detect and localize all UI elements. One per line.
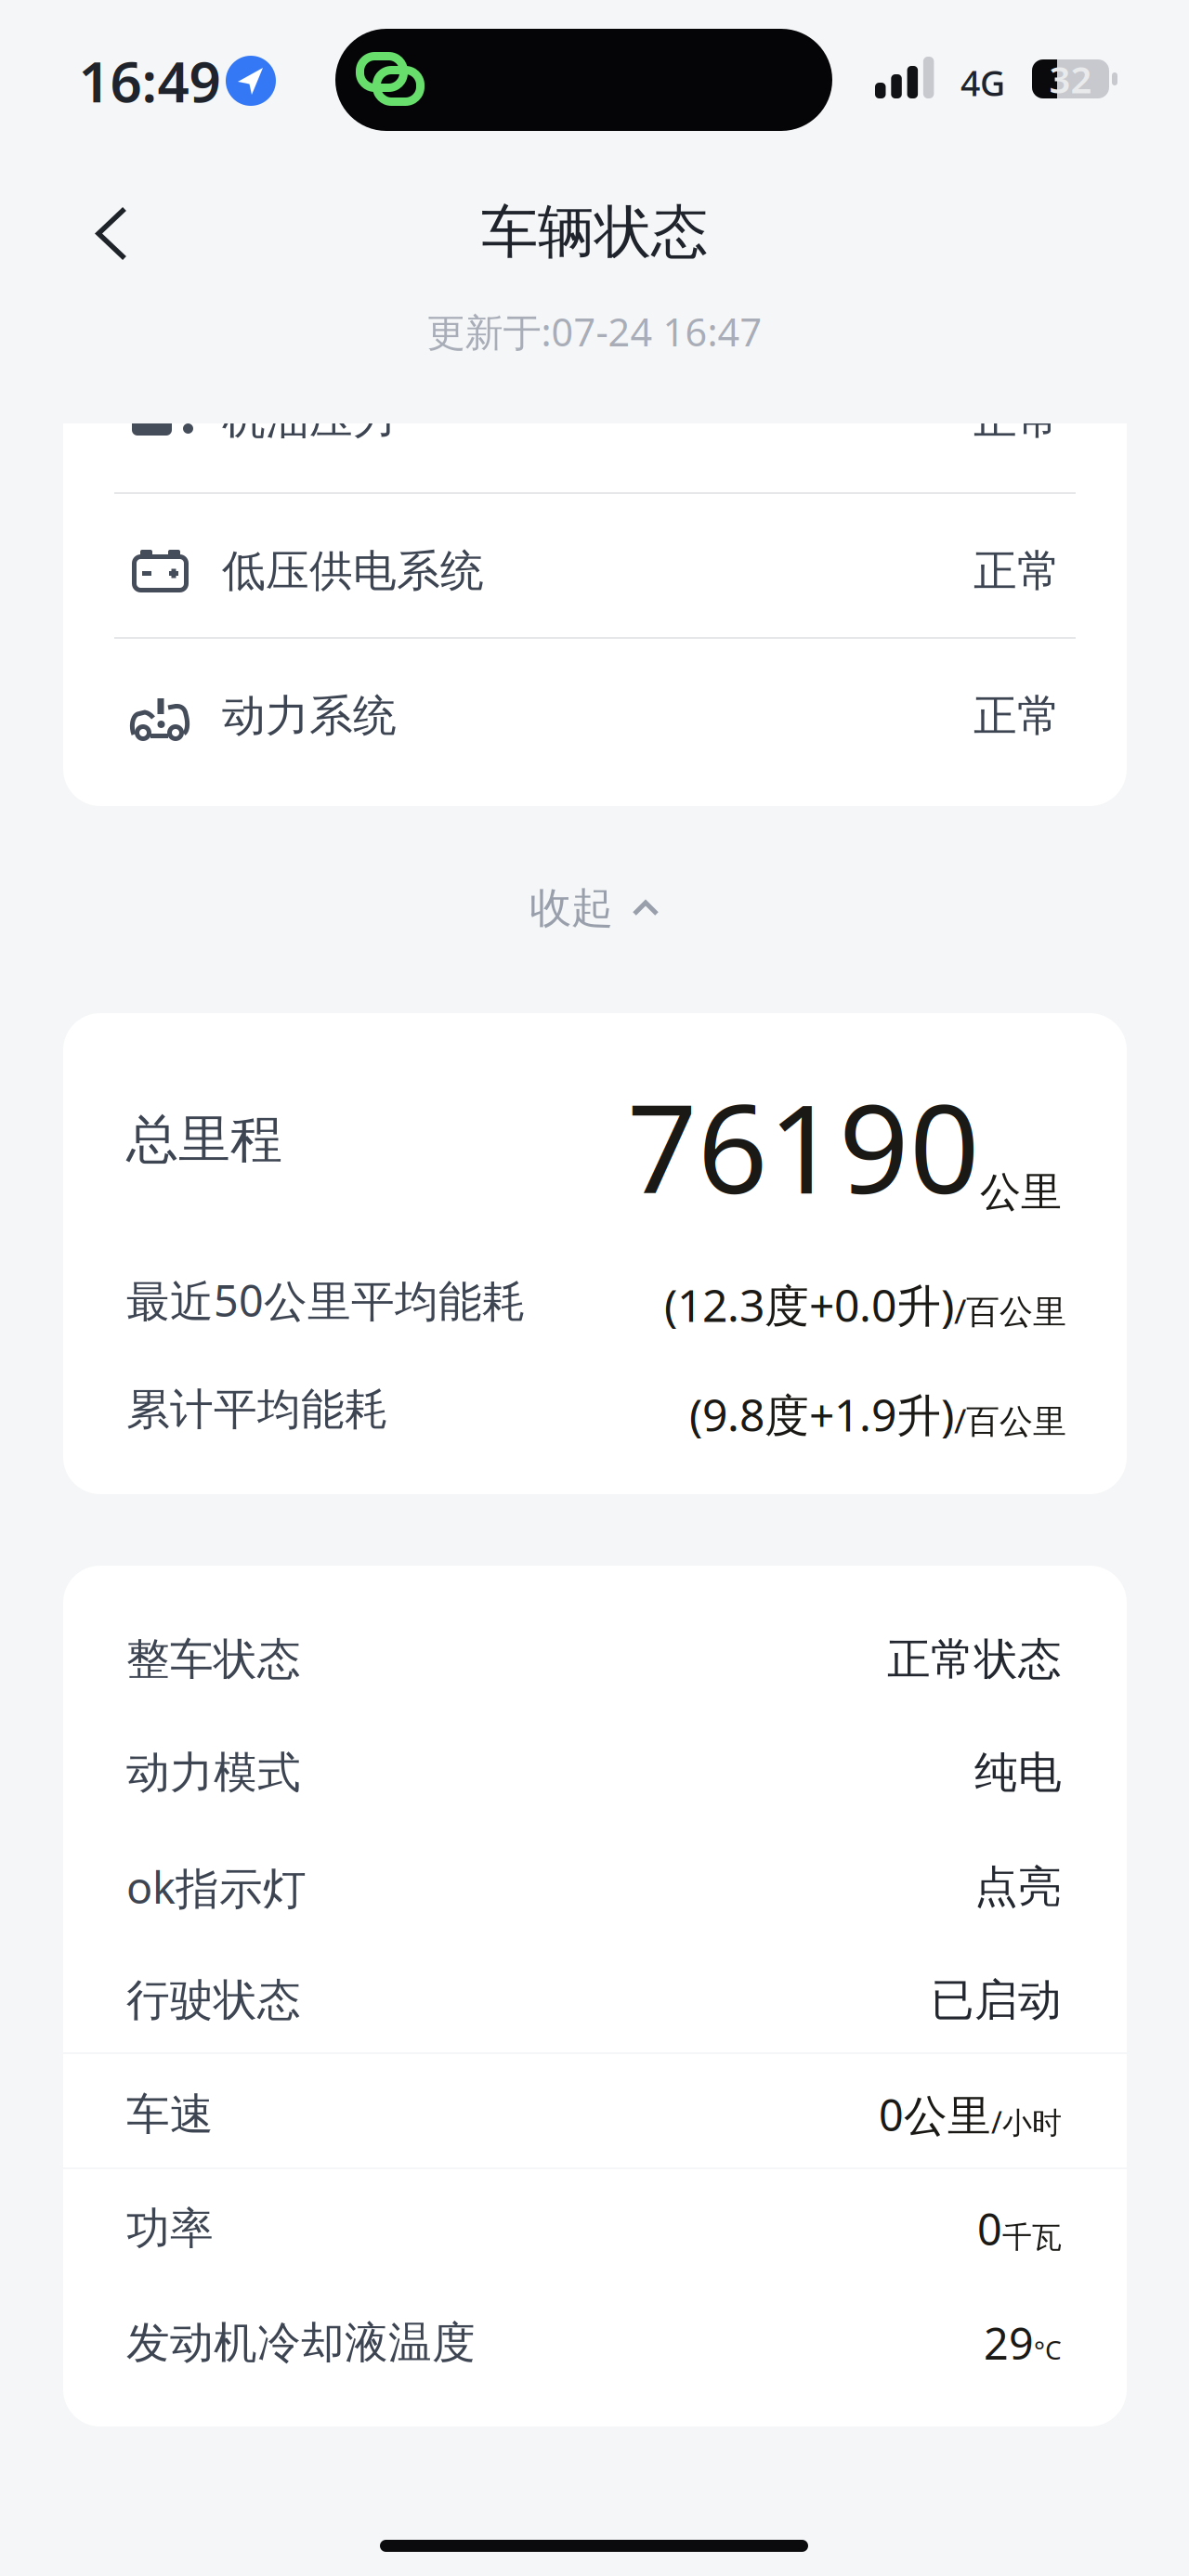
staticText: 机油压力: [222, 392, 397, 445]
staticText: (9.8度+1.9升)/百公里: [689, 1385, 1066, 1444]
staticText: 低压供电系统: [222, 544, 484, 598]
staticText: 车速: [126, 2088, 214, 2141]
staticText: 0公里/小时: [879, 2086, 1062, 2143]
button[interactable]: 返回: [74, 197, 149, 271]
staticText: 功率: [126, 2202, 214, 2255]
button[interactable]: 收起: [464, 876, 725, 941]
staticText: 收起: [529, 882, 613, 934]
staticText: 纯电: [974, 1746, 1062, 1799]
staticText: 点亮: [974, 1860, 1062, 1914]
staticText: 正常: [973, 392, 1061, 445]
staticText: 4G: [960, 60, 1005, 106]
staticText: (12.3度+0.0升)/百公里: [664, 1275, 1066, 1334]
staticText: 正常: [973, 544, 1061, 598]
staticText: 76190公里: [627, 1065, 1062, 1227]
staticText: 整车状态: [126, 1633, 301, 1686]
staticText: 正常: [973, 689, 1061, 743]
staticText: 更新于:07-24 16:47: [427, 306, 762, 357]
staticText: 最近50公里平均能耗: [126, 1271, 526, 1329]
staticText: 累计平均能耗: [126, 1383, 388, 1436]
staticText: 行驶状态: [126, 1974, 301, 2027]
staticText: 16:49: [78, 44, 221, 118]
staticText: 已启动: [931, 1974, 1062, 2027]
staticText: 29°C: [984, 2314, 1062, 2372]
staticText: 动力系统: [222, 689, 397, 743]
staticText: 动力模式: [126, 1746, 301, 1799]
staticText: 总里程: [126, 1107, 282, 1171]
staticText: 车辆状态: [481, 197, 708, 267]
staticText: 发动机冷却液温度: [126, 2316, 476, 2369]
staticText: 32: [1049, 54, 1092, 104]
staticText: ok指示灯: [126, 1858, 307, 1916]
staticText: 正常状态: [887, 1633, 1062, 1686]
staticText: 0千瓦: [977, 2200, 1062, 2257]
